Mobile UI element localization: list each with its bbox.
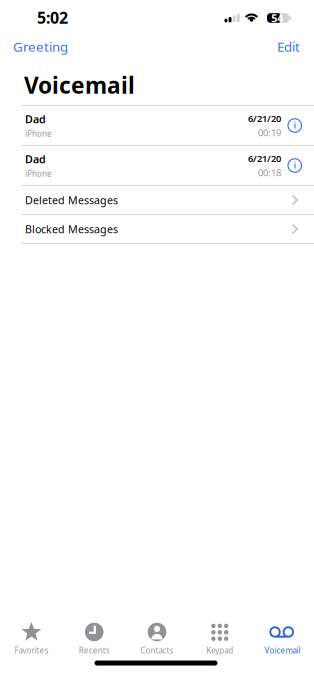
staticText: 6/21/20 bbox=[248, 112, 281, 124]
button[interactable]: Deleted Messages bbox=[0, 186, 314, 214]
button[interactable]: Voicemail bbox=[251, 622, 314, 656]
staticText: Favorites bbox=[14, 645, 48, 656]
staticText: 00:18 bbox=[258, 166, 281, 179]
button[interactable]: Dad bbox=[0, 106, 314, 145]
staticText: Contacts bbox=[140, 645, 173, 656]
staticText: Edit bbox=[277, 38, 300, 55]
staticText: Greeting bbox=[13, 38, 68, 55]
button[interactable]: Greeting bbox=[13, 38, 68, 55]
staticText: 5:02 bbox=[37, 7, 68, 28]
staticText: Voicemail bbox=[24, 70, 135, 100]
button[interactable]: Contacts bbox=[126, 622, 188, 656]
staticText: 00:19 bbox=[258, 126, 281, 139]
staticText: 6/21/20 bbox=[248, 152, 281, 164]
button[interactable]: Info bbox=[288, 119, 301, 132]
button[interactable]: Blocked Messages bbox=[0, 215, 314, 243]
staticText: iPhone bbox=[25, 128, 52, 139]
button[interactable]: Info bbox=[288, 159, 301, 172]
staticText: Deleted Messages bbox=[25, 193, 118, 207]
staticText: Dad bbox=[25, 112, 46, 126]
staticText: iPhone bbox=[25, 168, 52, 179]
button[interactable]: Favorites bbox=[0, 622, 63, 656]
staticText: i bbox=[294, 160, 296, 171]
staticText: 54 bbox=[271, 11, 283, 25]
button[interactable]: Dad bbox=[0, 146, 314, 185]
staticText: Blocked Messages bbox=[25, 222, 118, 236]
button[interactable]: Recents bbox=[63, 622, 126, 656]
staticText: Keypad bbox=[206, 645, 233, 656]
staticText: Dad bbox=[25, 152, 46, 166]
staticText: Voicemail bbox=[265, 645, 301, 656]
staticText: Recents bbox=[79, 645, 110, 656]
button[interactable]: Edit bbox=[277, 38, 300, 55]
button[interactable]: Keypad bbox=[188, 622, 251, 656]
staticText: i bbox=[294, 120, 296, 131]
